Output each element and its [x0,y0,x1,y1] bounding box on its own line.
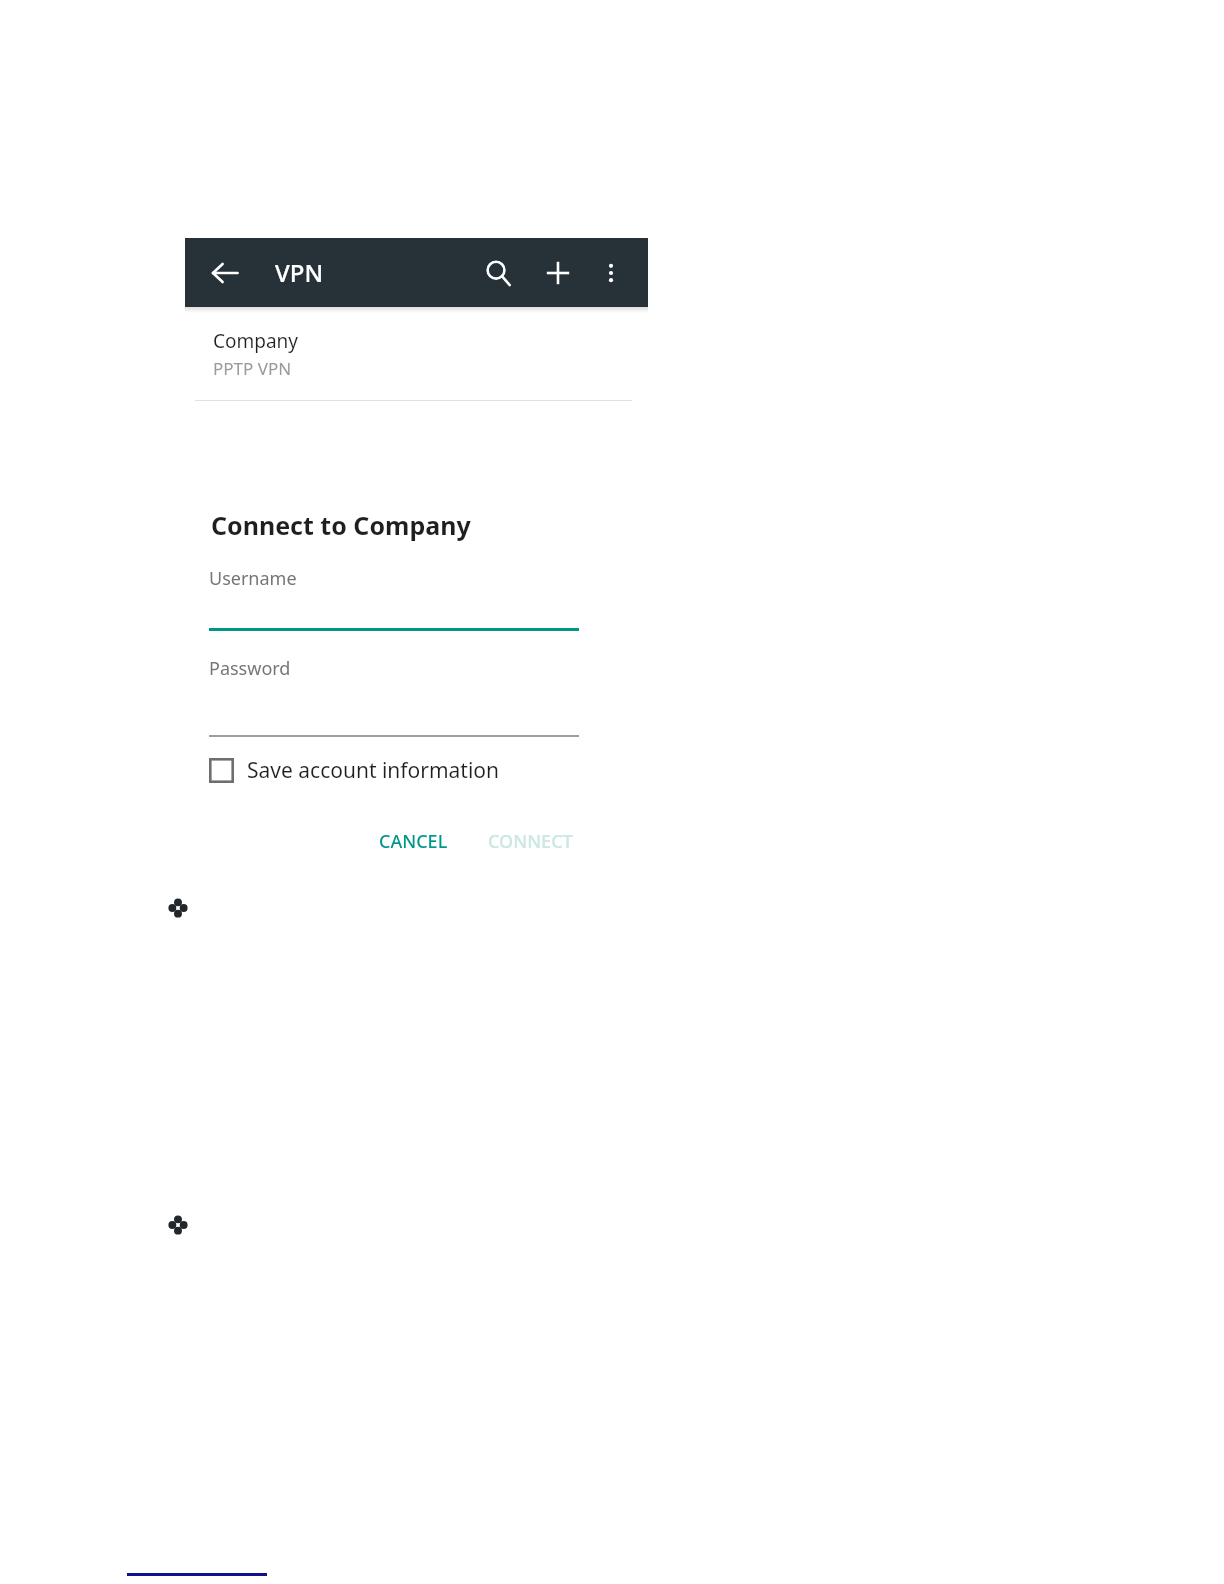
button[interactable]: Password [209,652,579,734]
button[interactable]: Add VPN profile [528,243,588,303]
button[interactable]: Company [195,312,632,400]
button[interactable]: CANCEL [363,818,464,864]
staticText: Save account information [247,756,500,785]
button[interactable]: Save account information [209,748,500,792]
button[interactable]: More options [583,245,639,301]
staticText: Password [209,656,291,681]
button[interactable]: CONNECT [472,818,589,864]
staticText: Connect to Company [211,508,471,542]
staticText: PPTP VPN [213,357,292,380]
staticText: Username [209,566,297,591]
staticText: VPN [275,256,324,289]
button[interactable]: Search [468,243,528,303]
staticText: CANCEL [379,829,448,854]
button[interactable]: Navigate up [195,243,255,303]
button[interactable]: Username [209,562,579,632]
staticText: Company [213,328,299,354]
staticText: CONNECT [488,829,573,854]
